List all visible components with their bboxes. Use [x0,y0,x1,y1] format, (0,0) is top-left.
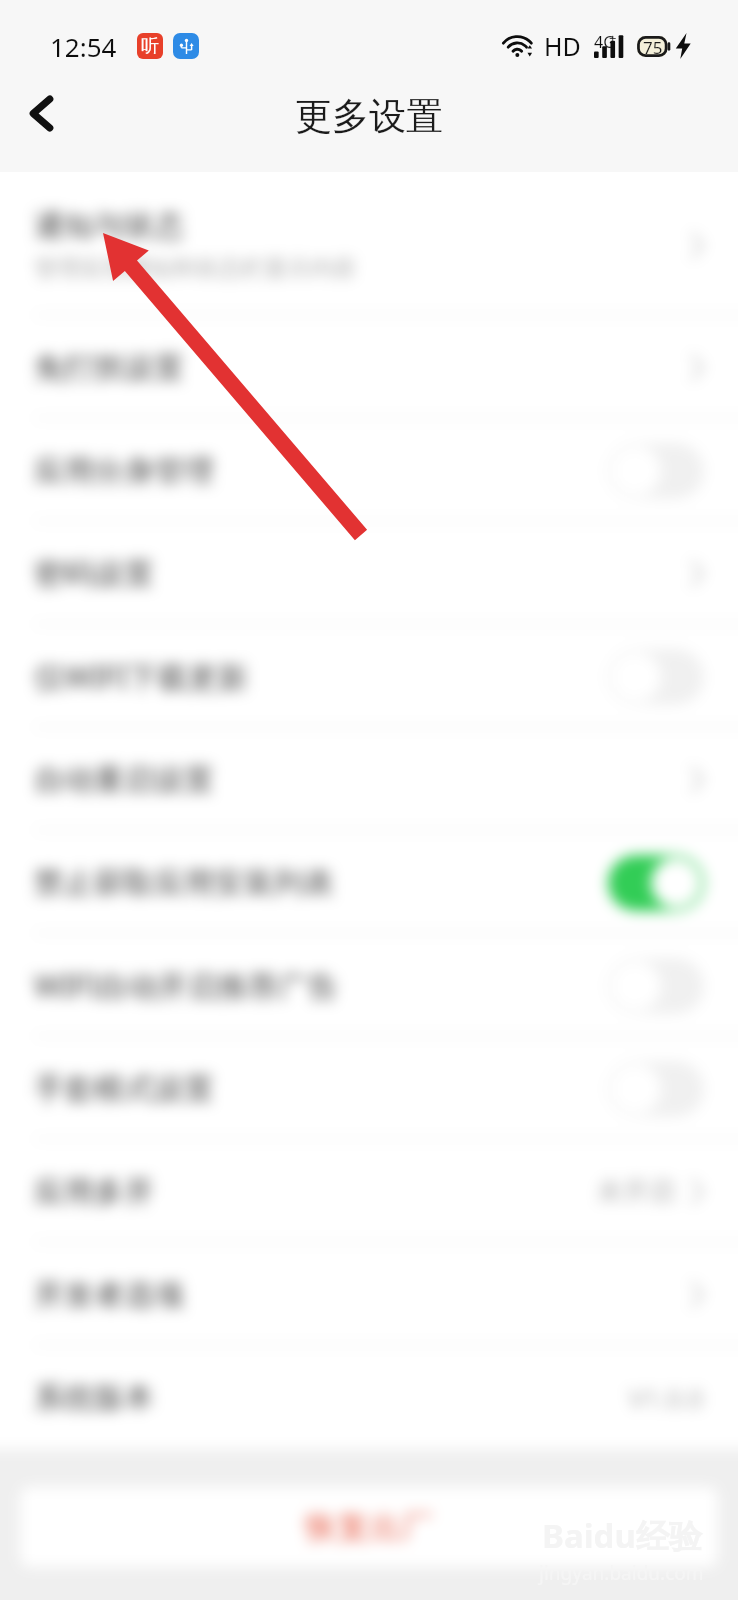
button[interactable]: WIFI自动开启推荐广告 [0,934,738,1037]
button[interactable]: Toggle [608,855,704,911]
staticText: 应用多开 [34,1173,154,1211]
button[interactable]: 应用多开 [0,1140,738,1243]
button[interactable]: Toggle [608,649,704,705]
button[interactable]: 应用分身管理 [0,419,738,522]
staticText: 系统版本 [34,1379,154,1417]
staticText: 应用分身管理 [34,452,214,490]
staticText: 更多设置 [295,93,443,140]
staticText: 自动重启设置 [34,761,214,799]
button[interactable]: 免打扰设置 [0,316,738,419]
staticText: + [609,29,617,47]
staticText: 禁止获取应用安装列表 [34,864,334,902]
staticText: 未开启 [597,1175,675,1208]
staticText: HD [544,29,581,63]
button[interactable]: 手套模式设置 [0,1037,738,1140]
staticText: 手套模式设置 [34,1070,214,1108]
button[interactable]: Toggle [608,1061,704,1117]
button[interactable]: 恢复出厂 [20,1487,718,1567]
staticText: 4G [594,31,615,53]
staticText: WIFI自动开启推荐广告 [34,965,338,1006]
staticText: 75 [643,36,663,57]
staticText: 恢复出厂 [305,1507,433,1547]
button[interactable]: 开发者选项 [0,1243,738,1346]
button[interactable]: 禁止获取应用安装列表 [0,831,738,934]
staticText: 仅WIFI下载更新 [34,656,248,697]
button[interactable]: 仅WIFI下载更新 [0,625,738,728]
button[interactable]: 通知与状态 [0,174,738,316]
button[interactable]: Toggle [608,443,704,499]
staticText: 免打扰设置 [34,349,184,387]
staticText: jingyan.baidu.com [539,1560,704,1586]
staticText: 通知与状态 [34,207,184,245]
button[interactable]: 自动重启设置 [0,728,738,831]
staticText: 密码设置 [34,555,154,593]
staticText: Baidu经验 [542,1513,702,1558]
button[interactable]: Toggle [608,958,704,1014]
button[interactable]: 密码设置 [0,522,738,625]
staticText: 12:54 [50,29,117,64]
staticText: 开发者选项 [34,1276,184,1314]
staticText: 管理应用通知和状态栏显示内容 [34,254,356,283]
staticText: V1.0.0 [629,1380,704,1415]
button[interactable]: 系统版本 [0,1346,738,1449]
button[interactable]: Back [0,65,82,161]
staticText: 听 [141,35,159,58]
